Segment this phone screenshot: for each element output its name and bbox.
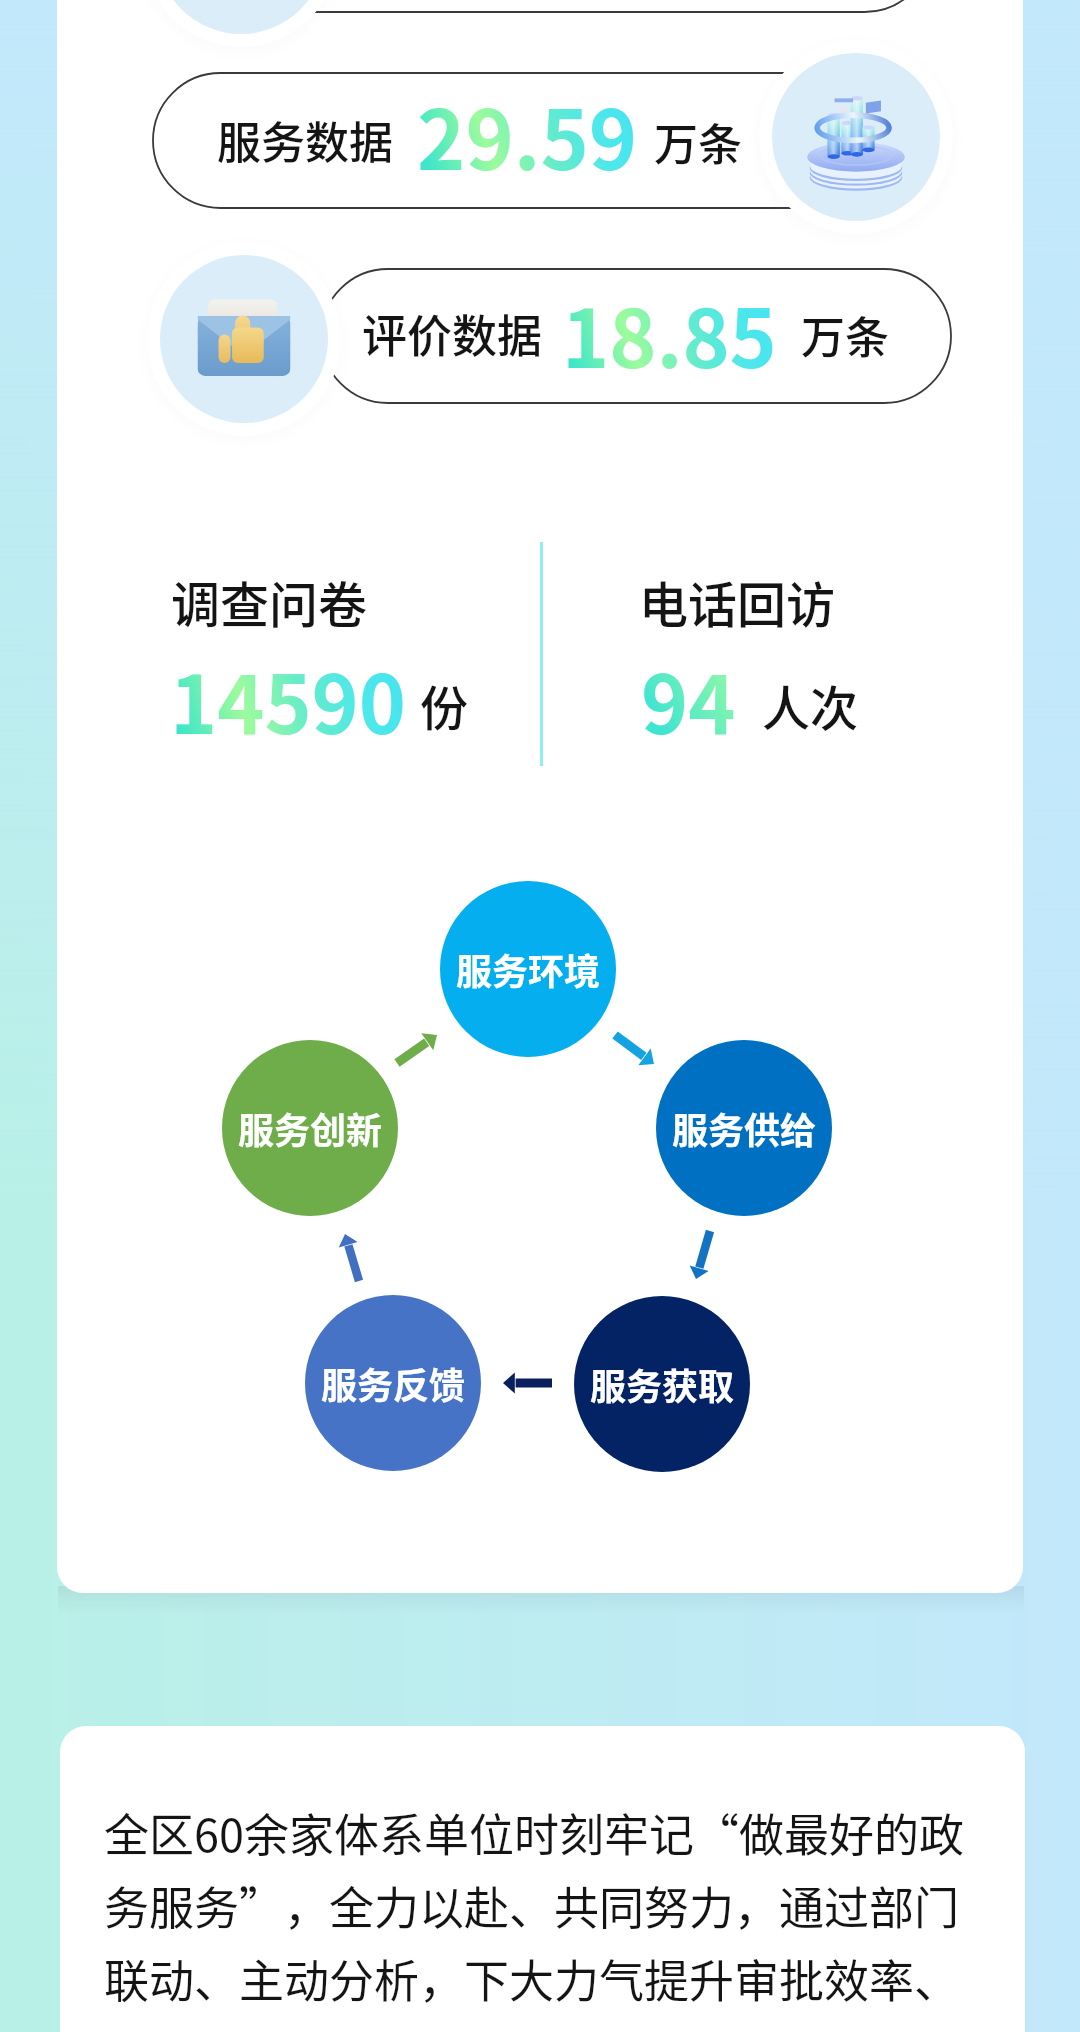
staticText: 服务供给 [672, 1102, 817, 1154]
button[interactable]: 评价数据 18.85 万条 [148, 250, 952, 422]
button[interactable]: 服务反馈 [305, 1295, 481, 1471]
staticText: 全区60余家体系单位时刻牢记“做最好的政务服务”，全力以赴、共同努力，通过部门联… [104, 1800, 980, 2011]
button[interactable]: 服务数据图标 [759, 40, 953, 234]
staticText: 份 [420, 670, 469, 740]
staticText: 服务反馈 [321, 1357, 466, 1409]
staticText: 调查问卷 [171, 566, 368, 637]
staticText: 14590 [170, 641, 406, 757]
staticText: 评价数据 [362, 301, 543, 366]
button[interactable]: 办件数据图标 [144, 0, 338, 47]
button[interactable]: 评价数据图标 [147, 242, 341, 436]
button[interactable]: 服务供给 [656, 1040, 832, 1216]
button[interactable]: 服务环境 [440, 881, 616, 1057]
staticText: 人次 [762, 670, 859, 740]
staticText: 万条 [654, 110, 742, 174]
staticText: 服务获取 [590, 1358, 735, 1410]
staticText: 服务创新 [238, 1102, 383, 1154]
staticText: 18.85 [562, 275, 777, 391]
staticText: 万条 [801, 303, 889, 367]
staticText: 94 [641, 641, 736, 757]
button[interactable]: 调查问卷 14590 份 [172, 560, 492, 770]
button[interactable]: 电话回访 94 人次 [600, 560, 920, 770]
staticText: 电话回访 [639, 566, 836, 637]
staticText: 29.59 [417, 75, 638, 194]
button[interactable]: 服务获取 [574, 1296, 750, 1472]
button[interactable]: 服务创新 [222, 1040, 398, 1216]
staticText: 服务数据 [217, 108, 393, 172]
button[interactable]: 服务数据 29.59 万条 [152, 72, 952, 209]
staticText: 服务环境 [456, 943, 601, 995]
